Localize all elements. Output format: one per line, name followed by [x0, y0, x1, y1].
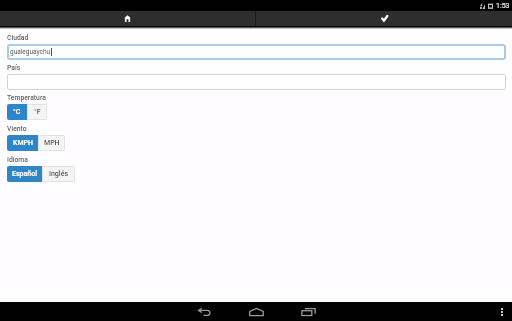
staticText: Inglés	[49, 170, 69, 178]
button[interactable]: Recent apps	[289, 302, 327, 321]
button[interactable]: MPH	[38, 135, 65, 151]
staticText: Viento	[7, 125, 27, 133]
button[interactable]: °C	[7, 104, 27, 120]
button[interactable]: Back	[186, 302, 223, 321]
button[interactable]: Home	[0, 11, 255, 26]
staticText: °C	[13, 108, 21, 116]
button[interactable]: Accept	[256, 11, 512, 26]
button[interactable]: gualeguaychu	[7, 44, 506, 60]
staticText: MPH	[44, 139, 60, 147]
staticText: KMPH	[13, 139, 33, 147]
button[interactable]: Inglés	[42, 166, 75, 182]
button[interactable]: KMPH	[7, 135, 38, 151]
button[interactable]: Home	[237, 302, 275, 321]
button[interactable]: More options	[492, 302, 512, 321]
button[interactable]: Español	[7, 166, 42, 182]
staticText: Ciudad	[7, 34, 29, 42]
button[interactable]: °F	[27, 104, 47, 120]
button[interactable]	[7, 74, 506, 90]
staticText: País	[7, 64, 21, 72]
staticText: °F	[34, 108, 41, 116]
staticText: Temperatura	[7, 94, 46, 102]
staticText: Español	[12, 170, 37, 178]
staticText: Idioma	[7, 156, 28, 164]
staticText: gualeguaychu	[10, 48, 51, 56]
staticText: 1:53	[496, 2, 510, 10]
